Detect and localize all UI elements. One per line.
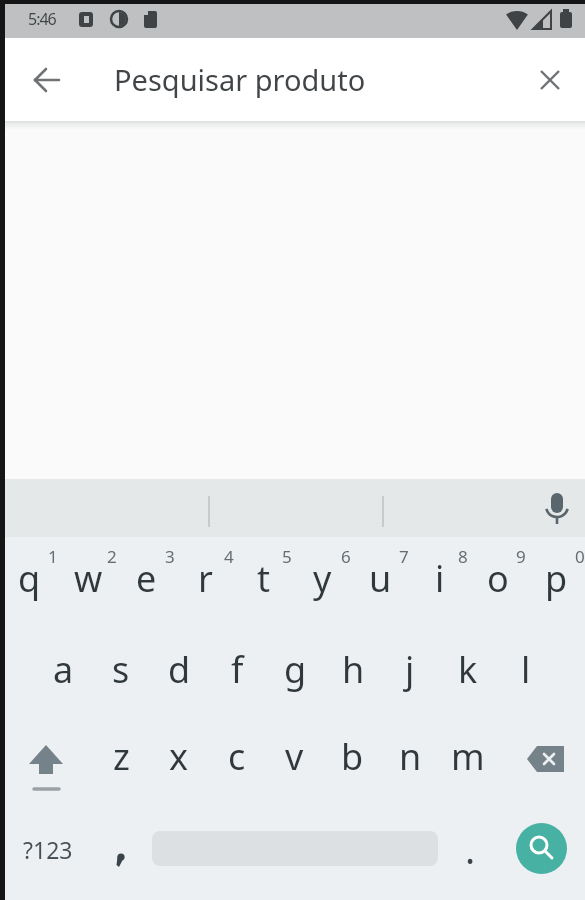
button[interactable]: [514, 722, 576, 798]
button[interactable]: ?123: [10, 806, 86, 892]
button[interactable]: f: [208, 626, 266, 712]
button[interactable]: g: [266, 626, 324, 712]
button[interactable]: z: [92, 713, 150, 799]
staticText: b: [341, 732, 364, 781]
staticText: .: [465, 823, 476, 875]
staticText: o: [487, 554, 509, 603]
button[interactable]: m: [439, 713, 497, 799]
button[interactable]: u: [351, 536, 410, 620]
button[interactable]: k: [439, 626, 497, 712]
staticText: f: [231, 645, 244, 694]
staticText: a: [53, 645, 74, 694]
button[interactable]: j: [381, 626, 439, 712]
button[interactable]: c: [208, 713, 266, 799]
staticText: m: [451, 732, 485, 781]
staticText: u: [369, 554, 392, 603]
staticText: x: [169, 732, 189, 781]
button[interactable]: [95, 820, 147, 876]
staticText: c: [228, 732, 246, 781]
staticText: h: [342, 645, 365, 694]
staticText: 0: [575, 545, 585, 567]
staticText: r: [198, 554, 213, 603]
button[interactable]: l: [497, 626, 555, 712]
staticText: 9: [516, 545, 526, 567]
button[interactable]: v: [265, 713, 323, 799]
staticText: ?123: [23, 834, 73, 865]
staticText: v: [285, 732, 304, 781]
button[interactable]: n: [381, 713, 439, 799]
button[interactable]: a: [34, 626, 92, 712]
button[interactable]: [539, 488, 575, 530]
button[interactable]: x: [150, 713, 208, 799]
staticText: 5: [282, 545, 292, 567]
button[interactable]: p: [527, 536, 585, 620]
button[interactable]: i: [410, 536, 469, 620]
staticText: 7: [399, 545, 409, 567]
button[interactable]: r: [176, 536, 235, 620]
staticText: 4: [224, 545, 234, 567]
button[interactable]: w: [59, 536, 118, 620]
staticText: 5:46: [28, 8, 56, 30]
button[interactable]: b: [323, 713, 381, 799]
button[interactable]: .: [442, 806, 498, 892]
staticText: q: [18, 554, 41, 603]
button[interactable]: e: [117, 536, 176, 620]
staticText: w: [74, 554, 103, 603]
staticText: y: [313, 554, 332, 603]
staticText: 6: [341, 545, 351, 567]
staticText: e: [136, 554, 157, 603]
staticText: l: [521, 645, 531, 694]
button[interactable]: y: [293, 536, 352, 620]
staticText: d: [168, 645, 191, 694]
staticText: 8: [458, 545, 468, 567]
button[interactable]: t: [234, 536, 293, 620]
staticText: g: [284, 645, 307, 694]
staticText: 2: [107, 545, 117, 567]
button[interactable]: o: [468, 536, 527, 620]
button[interactable]: [23, 56, 71, 104]
staticText: k: [458, 645, 478, 694]
staticText: Pesquisar produto: [114, 60, 366, 99]
staticText: i: [435, 554, 445, 603]
staticText: t: [257, 554, 270, 603]
staticText: n: [399, 732, 422, 781]
staticText: p: [545, 554, 568, 603]
button[interactable]: [516, 823, 567, 874]
staticText: s: [112, 645, 130, 694]
button[interactable]: [526, 56, 574, 104]
staticText: 1: [48, 545, 58, 567]
button[interactable]: d: [150, 626, 208, 712]
staticText: j: [405, 645, 415, 694]
button[interactable]: s: [92, 626, 150, 712]
button[interactable]: [16, 722, 76, 798]
button[interactable]: h: [324, 626, 382, 712]
staticText: 3: [165, 545, 175, 567]
button[interactable]: q: [0, 536, 59, 620]
staticText: z: [113, 732, 130, 781]
